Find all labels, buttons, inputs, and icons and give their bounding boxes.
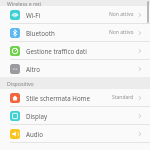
staticText: Display — [26, 112, 137, 120]
staticText: Non attivo — [109, 11, 134, 18]
staticText: Altro — [26, 65, 137, 73]
staticText: Wi-Fi — [26, 11, 109, 19]
staticText: Wireless e reti — [7, 0, 42, 6]
button[interactable]: Wi-Fi — [0, 6, 150, 24]
staticText: Gestione traffico dati — [26, 47, 137, 55]
button[interactable]: Stile schermata Home — [0, 89, 150, 107]
button[interactable]: Bluetooth — [0, 24, 150, 42]
staticText: Standard — [112, 94, 134, 101]
staticText: Bluetooth — [26, 29, 109, 37]
button[interactable]: Gestione traffico dati — [0, 42, 150, 60]
staticText: Non attivo — [109, 29, 134, 36]
button[interactable]: Audio — [0, 125, 150, 143]
staticText: Audio — [26, 130, 137, 138]
staticText: Stile schermata Home — [26, 94, 112, 102]
staticText: Dispositivo — [7, 80, 34, 87]
button[interactable]: Display — [0, 107, 150, 125]
button[interactable]: Altro — [0, 60, 150, 77]
